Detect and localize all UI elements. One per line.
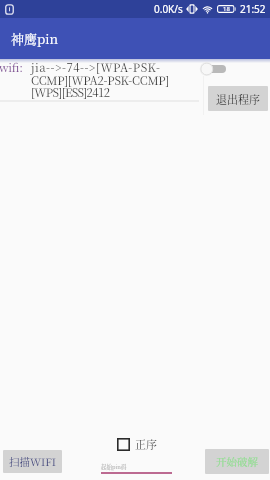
staticText: 0.0K/s — [154, 2, 183, 16]
staticText: CCMP][WPA2-PSK-CCMP] — [31, 72, 169, 89]
staticText: 21:52 — [240, 2, 266, 16]
staticText: 开始破解 — [216, 454, 258, 469]
staticText: 退出程序 — [216, 91, 260, 107]
staticText: 神鹰pin — [11, 29, 59, 48]
staticText: jia-->-74-->[WPA-PSK- — [31, 59, 161, 76]
staticText: 正序 — [135, 436, 157, 452]
staticText: wifi: — [0, 59, 23, 76]
button[interactable]: 起始pin码 — [101, 458, 172, 475]
staticText: [WPS][ESS]2412 — [31, 84, 110, 101]
staticText: 起始pin码 — [101, 463, 127, 471]
button[interactable]: 扫描WIFI — [3, 450, 62, 473]
button[interactable]: 开始破解 — [205, 449, 269, 474]
staticText: 扫描WIFI — [9, 454, 57, 469]
staticText: 18 — [223, 5, 230, 13]
button[interactable]: 正序 — [117, 436, 157, 452]
button[interactable]: Toggle — [200, 62, 226, 76]
button[interactable]: 退出程序 — [208, 86, 268, 111]
